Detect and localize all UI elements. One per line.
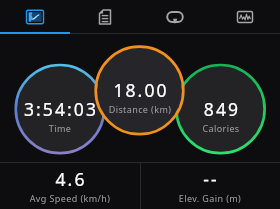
staticText: 4.6 xyxy=(0,167,171,191)
button[interactable]: Details xyxy=(70,0,140,34)
staticText: Elev. Gain (m) xyxy=(110,192,280,204)
staticText: Distance (km) xyxy=(40,103,240,115)
staticText: 3:54:03 xyxy=(0,97,161,121)
staticText: 18.00 xyxy=(41,78,241,102)
button[interactable]: Charts xyxy=(210,0,280,34)
staticText: -- xyxy=(111,167,280,191)
staticText: Time xyxy=(0,122,160,134)
button[interactable] xyxy=(0,163,139,209)
button[interactable] xyxy=(141,163,280,209)
button[interactable]: Map xyxy=(0,0,70,34)
staticText: 849 xyxy=(122,97,280,121)
button[interactable]: Laps xyxy=(140,0,210,34)
staticText: Avg Speed (km/h) xyxy=(0,192,170,204)
staticText: Calories xyxy=(121,122,280,134)
